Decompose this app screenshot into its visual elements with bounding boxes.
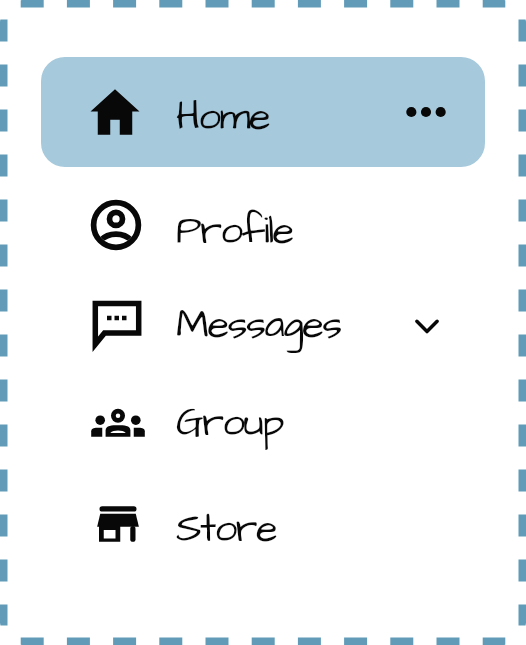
staticText: Profile	[176, 204, 293, 260]
button[interactable]	[0, 57, 526, 167]
staticText: Messages	[176, 298, 341, 354]
button[interactable]	[0, 476, 526, 577]
button[interactable]	[0, 375, 526, 476]
button[interactable]	[0, 274, 526, 375]
staticText: Store	[176, 502, 277, 558]
staticText: Home	[176, 90, 270, 146]
button[interactable]: Expand Messages	[397, 296, 457, 356]
button[interactable]: More options	[396, 82, 456, 142]
button[interactable]	[0, 173, 526, 274]
staticText: Group	[176, 396, 283, 452]
